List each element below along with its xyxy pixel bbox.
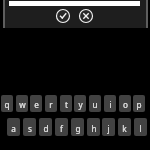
button[interactable]: a	[7, 118, 20, 136]
staticText: t	[65, 99, 68, 110]
staticText: y	[78, 99, 83, 110]
staticText: k	[122, 123, 127, 134]
staticText: h	[91, 123, 97, 134]
button[interactable]: p	[133, 95, 145, 112]
staticText: r	[49, 99, 53, 110]
button[interactable]: g	[71, 118, 84, 136]
staticText: p	[136, 99, 142, 110]
button[interactable]: l	[134, 118, 147, 136]
staticText: s	[28, 123, 32, 134]
button[interactable]: u	[89, 95, 101, 112]
button[interactable]: y	[74, 95, 86, 112]
staticText: g	[75, 123, 81, 134]
button[interactable]: f	[55, 118, 68, 136]
button[interactable]: s	[23, 118, 36, 136]
staticText: q	[4, 99, 10, 110]
button[interactable]	[56, 9, 70, 23]
button[interactable]: r	[45, 95, 57, 112]
button[interactable]: e	[30, 95, 42, 112]
staticText: l	[139, 123, 142, 134]
staticText: a	[11, 123, 16, 134]
staticText: e	[34, 99, 39, 110]
button[interactable]: j	[102, 118, 115, 136]
staticText: d	[43, 123, 49, 134]
staticText: u	[92, 99, 98, 110]
button[interactable]	[79, 9, 93, 23]
button[interactable]: t	[60, 95, 72, 112]
staticText: i	[109, 99, 112, 110]
button[interactable]: i	[104, 95, 116, 112]
staticText: f	[60, 123, 63, 134]
staticText: o	[123, 99, 128, 110]
staticText: w	[19, 99, 26, 110]
button[interactable]: k	[118, 118, 131, 136]
button[interactable]: d	[39, 118, 52, 136]
button[interactable]: h	[87, 118, 100, 136]
button[interactable]: q	[1, 95, 13, 112]
button[interactable]: o	[119, 95, 131, 112]
button[interactable]: w	[16, 95, 28, 112]
staticText: j	[107, 123, 110, 134]
